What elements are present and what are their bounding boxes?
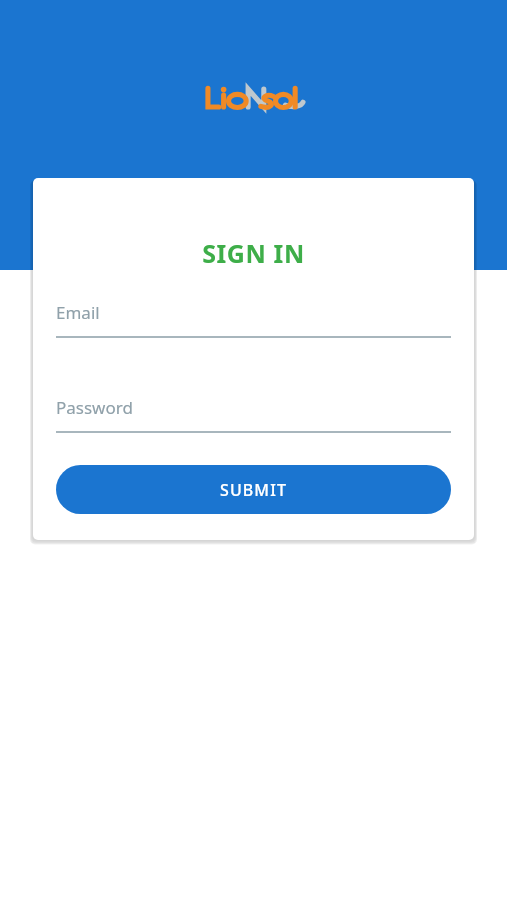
staticText: Email [56,301,100,324]
button[interactable]: Email [33,301,474,338]
other: Lionsol logo [205,83,303,113]
staticText: SUBMIT [220,479,288,501]
staticText: Password [56,396,133,419]
staticText: SIGN IN [33,236,474,270]
button[interactable]: SUBMIT [56,465,451,514]
button[interactable]: Password [33,396,474,433]
